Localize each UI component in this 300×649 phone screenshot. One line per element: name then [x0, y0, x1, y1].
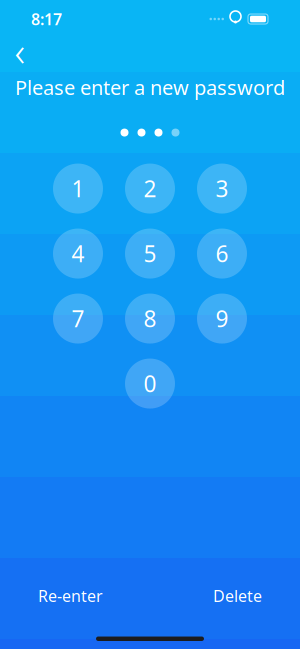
staticText: 9	[215, 303, 228, 334]
staticText: 2	[143, 173, 156, 204]
staticText: 8	[143, 303, 156, 334]
button[interactable]: Re-enter	[34, 579, 107, 612]
staticText: Please enter a new password	[15, 74, 285, 101]
button[interactable]: 9	[197, 294, 247, 344]
staticText: 7	[71, 303, 84, 334]
button[interactable]: 3	[197, 164, 247, 214]
staticText: ‹	[14, 24, 25, 77]
button[interactable]: 5	[125, 229, 175, 279]
button[interactable]: 7	[53, 294, 103, 344]
button[interactable]: Delete	[209, 579, 266, 612]
staticText: 3	[215, 173, 228, 204]
button[interactable]: 0	[125, 359, 175, 409]
staticText: Delete	[213, 585, 262, 606]
button[interactable]: Back	[3, 34, 37, 68]
button[interactable]: 2	[125, 164, 175, 214]
button[interactable]: 8	[125, 294, 175, 344]
staticText: 0	[143, 368, 156, 399]
button[interactable]: 6	[197, 229, 247, 279]
staticText: 8:17	[31, 8, 62, 30]
button[interactable]: 4	[53, 229, 103, 279]
button[interactable]: 1	[53, 164, 103, 214]
staticText: 6	[215, 238, 228, 269]
staticText: Re-enter	[38, 585, 103, 606]
staticText: 1	[71, 173, 84, 204]
staticText: 4	[71, 238, 84, 269]
staticText: 5	[143, 238, 156, 269]
